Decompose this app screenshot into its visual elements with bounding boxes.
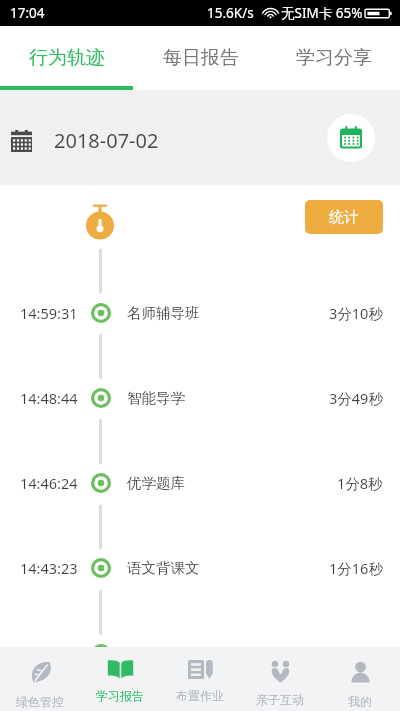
staticText: 我的 [348, 694, 372, 709]
staticText: 14:46:24 [20, 473, 78, 493]
button[interactable]: 我的 [320, 647, 400, 711]
button[interactable]: 14:41:57 [0, 611, 400, 696]
button[interactable]: 布置作业 [160, 647, 240, 711]
button[interactable]: 学习报告 [80, 647, 160, 711]
staticText: 14:48:44 [20, 388, 78, 408]
staticText: 1分30秒 [329, 644, 383, 664]
button[interactable]: 亲子互动 [240, 647, 320, 711]
staticText: 布置作业 [176, 688, 224, 703]
staticText: 行为轨迹 [29, 46, 105, 70]
staticText: 2018-07-02 [54, 127, 159, 154]
staticText: 语文背课文 [127, 559, 200, 577]
staticText: 亲子互动 [256, 692, 304, 707]
button[interactable]: Pick date [327, 114, 375, 162]
staticText: 每日报告 [163, 46, 239, 70]
staticText: 学习报告 [96, 688, 144, 703]
staticText: 14:59:31 [20, 303, 78, 323]
staticText: 1分16秒 [329, 558, 383, 578]
staticText: 智能导学 [127, 389, 185, 407]
staticText: 3分49秒 [329, 388, 383, 408]
staticText: 统计 [329, 208, 359, 227]
button[interactable]: 14:43:23 [0, 525, 400, 610]
button[interactable]: 统计 [305, 200, 383, 234]
staticText: 15.6K/s [207, 4, 254, 22]
staticText: 3分10秒 [329, 303, 383, 323]
staticText: 学习分享 [296, 46, 372, 70]
staticText: 14:41:57 [20, 644, 78, 664]
button[interactable]: 行为轨迹 [0, 29, 134, 86]
staticText: 17:04 [10, 4, 45, 22]
staticText: 1分8秒 [337, 473, 383, 493]
button[interactable]: 14:46:24 [0, 440, 400, 525]
staticText: 无SIM卡 65% [281, 4, 363, 22]
staticText: 名师辅导班 [127, 304, 200, 322]
staticText: 绿色管控 [16, 694, 64, 709]
button[interactable]: 绿色管控 [0, 647, 80, 711]
button[interactable]: 14:48:44 [0, 355, 400, 440]
staticText: 14:43:23 [20, 558, 78, 578]
button[interactable]: 每日报告 [134, 29, 267, 86]
staticText: 语文背课文 [127, 645, 200, 663]
button[interactable]: 14:59:31 [0, 270, 400, 355]
button[interactable]: 学习分享 [267, 29, 400, 86]
staticText: 优学题库 [127, 474, 185, 492]
